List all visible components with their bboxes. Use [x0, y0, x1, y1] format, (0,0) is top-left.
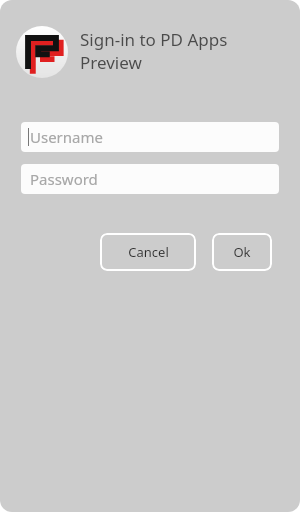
button[interactable]: Cancel — [100, 233, 196, 271]
staticText: Sign-in to PD Apps Preview — [80, 28, 286, 74]
staticText: Ok — [233, 243, 251, 261]
staticText: Username — [30, 127, 103, 147]
staticText: Cancel — [128, 243, 169, 261]
other: PD Apps logo — [16, 26, 68, 78]
staticText: Password — [30, 169, 98, 189]
button[interactable]: Password — [21, 164, 279, 194]
button[interactable]: Ok — [212, 233, 272, 271]
button[interactable]: Username — [21, 122, 279, 152]
